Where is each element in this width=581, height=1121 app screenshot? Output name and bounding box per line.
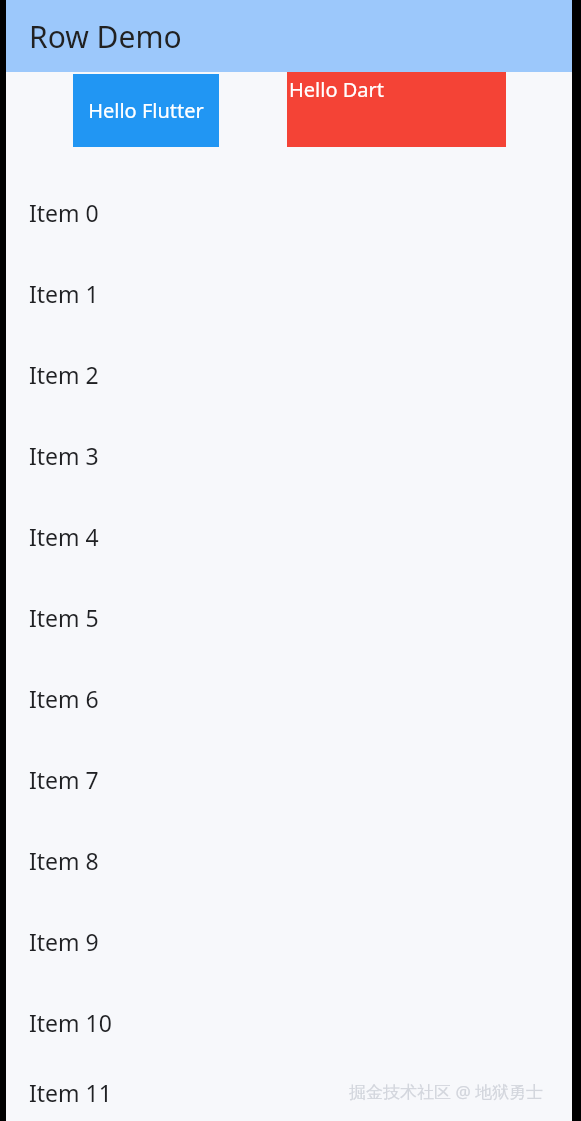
button[interactable]: Row Demo xyxy=(6,0,572,72)
staticText: Item 4 xyxy=(29,521,99,552)
staticText: Item 0 xyxy=(29,197,99,228)
staticText: Item 9 xyxy=(29,926,99,957)
staticText: Item 1 xyxy=(29,278,99,309)
staticText: Item 10 xyxy=(29,1007,112,1038)
button[interactable]: Item 2 xyxy=(6,334,572,415)
staticText: Item 7 xyxy=(29,764,99,795)
staticText: Item 8 xyxy=(29,845,99,876)
button[interactable]: Item 3 xyxy=(6,415,572,496)
button[interactable]: Hello Dart xyxy=(287,72,506,147)
button[interactable]: Hello Flutter xyxy=(73,74,219,147)
button[interactable]: Item 7 xyxy=(6,739,572,820)
staticText: Hello Flutter xyxy=(88,97,204,124)
staticText: Row Demo xyxy=(29,16,182,57)
button[interactable]: Item 8 xyxy=(6,820,572,901)
staticText: Hello Dart xyxy=(289,76,385,103)
button[interactable]: Item 9 xyxy=(6,901,572,982)
staticText: Item 2 xyxy=(29,359,99,390)
button[interactable]: Item 11 xyxy=(6,1063,572,1121)
staticText: 掘金技术社区 @ 地狱勇士 xyxy=(349,1080,544,1103)
button[interactable]: Item 5 xyxy=(6,577,572,658)
button[interactable]: Item 10 xyxy=(6,982,572,1063)
staticText: Item 6 xyxy=(29,683,99,714)
button[interactable]: Item 4 xyxy=(6,496,572,577)
button[interactable]: Item 1 xyxy=(6,253,572,334)
staticText: Item 3 xyxy=(29,440,99,471)
button[interactable]: Item 0 xyxy=(6,172,572,253)
button[interactable]: Item 6 xyxy=(6,658,572,739)
staticText: Item 11 xyxy=(29,1077,112,1108)
staticText: Item 5 xyxy=(29,602,99,633)
